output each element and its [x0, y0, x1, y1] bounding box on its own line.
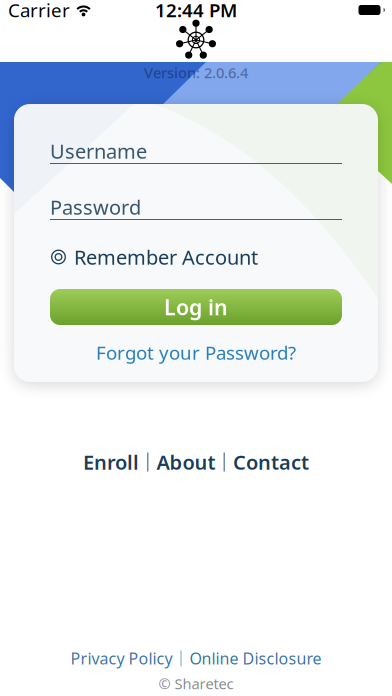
staticText: Remember Account: [74, 244, 258, 270]
button[interactable]: Forgot your Password?: [96, 343, 296, 362]
staticText: Privacy Policy: [70, 648, 172, 669]
staticText: Version: 2.0.6.4: [144, 63, 248, 82]
staticText: © Sharetec: [158, 674, 233, 693]
staticText: Online Disclosure: [190, 648, 322, 669]
button[interactable]: Contact: [233, 449, 309, 475]
button[interactable]: Enroll: [83, 449, 139, 475]
button[interactable]: Remember Account: [51, 246, 258, 268]
button[interactable]: Privacy Policy: [70, 648, 172, 669]
staticText: 12:44 PM: [155, 0, 237, 22]
staticText: Forgot your Password?: [96, 340, 296, 365]
staticText: Username: [50, 138, 147, 164]
staticText: Carrier: [8, 0, 70, 22]
button[interactable]: About: [156, 449, 215, 475]
button[interactable]: Password: [50, 198, 342, 220]
button[interactable]: Log in: [50, 289, 342, 325]
staticText: Contact: [233, 449, 309, 475]
staticText: Password: [50, 194, 141, 220]
staticText: Enroll: [83, 449, 139, 475]
staticText: Log in: [164, 293, 228, 321]
button[interactable]: Online Disclosure: [190, 648, 322, 669]
button[interactable]: Username: [50, 142, 342, 164]
staticText: About: [156, 449, 215, 475]
